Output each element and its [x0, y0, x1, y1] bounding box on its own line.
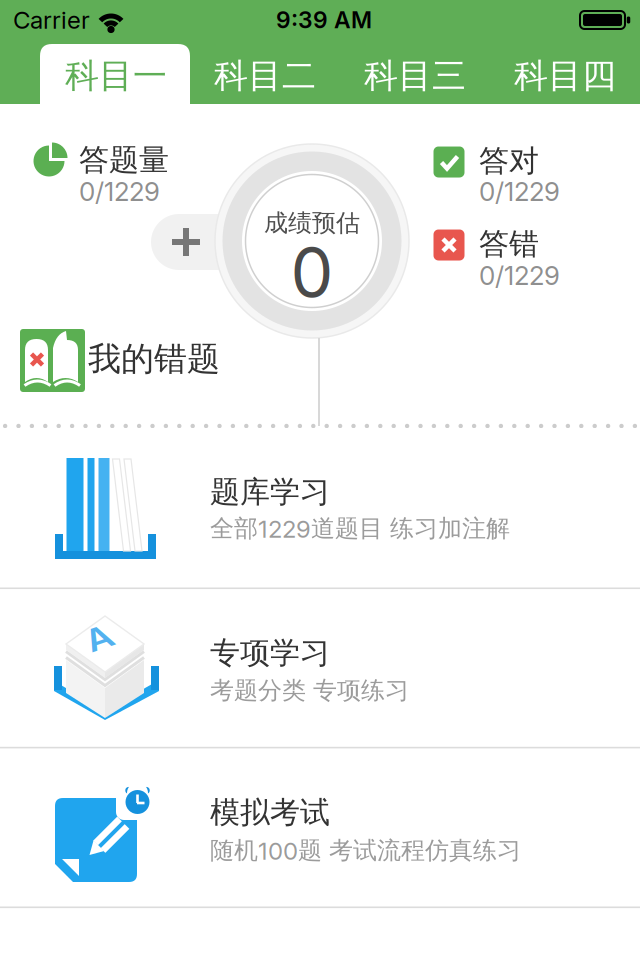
staticText: 0/1229	[479, 260, 560, 291]
staticText: Carrier	[13, 5, 90, 34]
button[interactable]: 科目三	[0, 0, 640, 960]
staticText: 答题量	[79, 141, 169, 179]
staticText: 科目一	[65, 55, 167, 97]
staticText: 答错	[479, 225, 539, 263]
staticText: 科目四	[514, 55, 616, 97]
staticText: 科目三	[364, 55, 466, 97]
staticText: 0	[290, 231, 333, 313]
staticText: 答对	[479, 142, 539, 180]
staticText: 0/1229	[79, 176, 160, 207]
staticText: 我的错题	[88, 338, 220, 380]
staticText: 题库学习	[210, 473, 330, 511]
staticText: 成绩预估	[264, 208, 360, 238]
button[interactable]: 我的错题	[0, 0, 640, 960]
staticText: 9:39 AM	[276, 6, 372, 34]
button[interactable]: 模拟考试	[0, 0, 640, 960]
staticText: A	[85, 615, 112, 661]
button[interactable]: 题库学习	[0, 0, 640, 960]
button[interactable]: 科目一	[0, 0, 640, 960]
button[interactable]: 科目二	[0, 0, 640, 960]
staticText: 模拟考试	[210, 794, 330, 831]
staticText: 专项学习	[210, 634, 330, 672]
button[interactable]: A	[0, 0, 640, 960]
button[interactable]: Add	[0, 0, 640, 960]
staticText: 随机100题 考试流程仿真练习	[210, 835, 521, 866]
staticText: 0/1229	[479, 176, 560, 207]
button[interactable]: 科目四	[0, 0, 640, 960]
staticText: 科目二	[214, 55, 316, 97]
staticText: 全部1229道题目 练习加注解	[210, 513, 510, 544]
staticText: 考题分类 专项练习	[210, 675, 409, 706]
